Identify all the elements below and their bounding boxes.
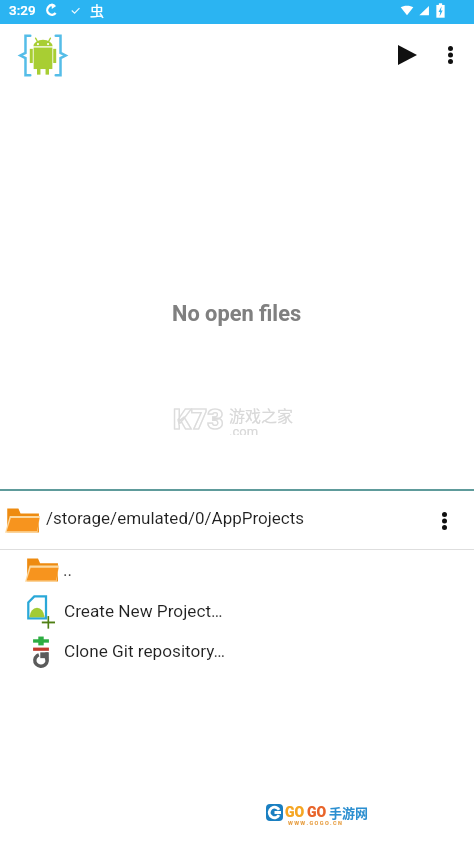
staticText: Clone Git repository… (64, 641, 226, 661)
staticText: W W W . G O G O . C N (288, 820, 342, 826)
button[interactable]: Create New Project… (0, 590, 474, 630)
staticText: .com (229, 424, 259, 435)
staticText: 虫 (90, 0, 104, 20)
staticText: Create New Project… (64, 601, 223, 621)
staticText: 3:29 (9, 2, 36, 18)
staticText: 手游网 (329, 803, 369, 822)
staticText: GO (285, 804, 305, 820)
button[interactable]: More options (427, 31, 474, 78)
staticText: 游戏之家 (229, 403, 294, 426)
staticText: /storage/emulated/0/AppProjects (46, 508, 421, 528)
button[interactable]: More options (421, 497, 468, 544)
button[interactable]: Clone Git repository… (0, 630, 474, 670)
button[interactable]: App icon (18, 31, 68, 79)
staticText: No open files (172, 301, 302, 327)
staticText: GO (307, 804, 327, 820)
button[interactable]: .. (0, 550, 474, 590)
button[interactable]: /storage/emulated/0/AppProjects (0, 491, 474, 549)
button[interactable]: Run (375, 30, 427, 78)
staticText: K73 (173, 403, 224, 436)
staticText: .. (63, 560, 73, 580)
